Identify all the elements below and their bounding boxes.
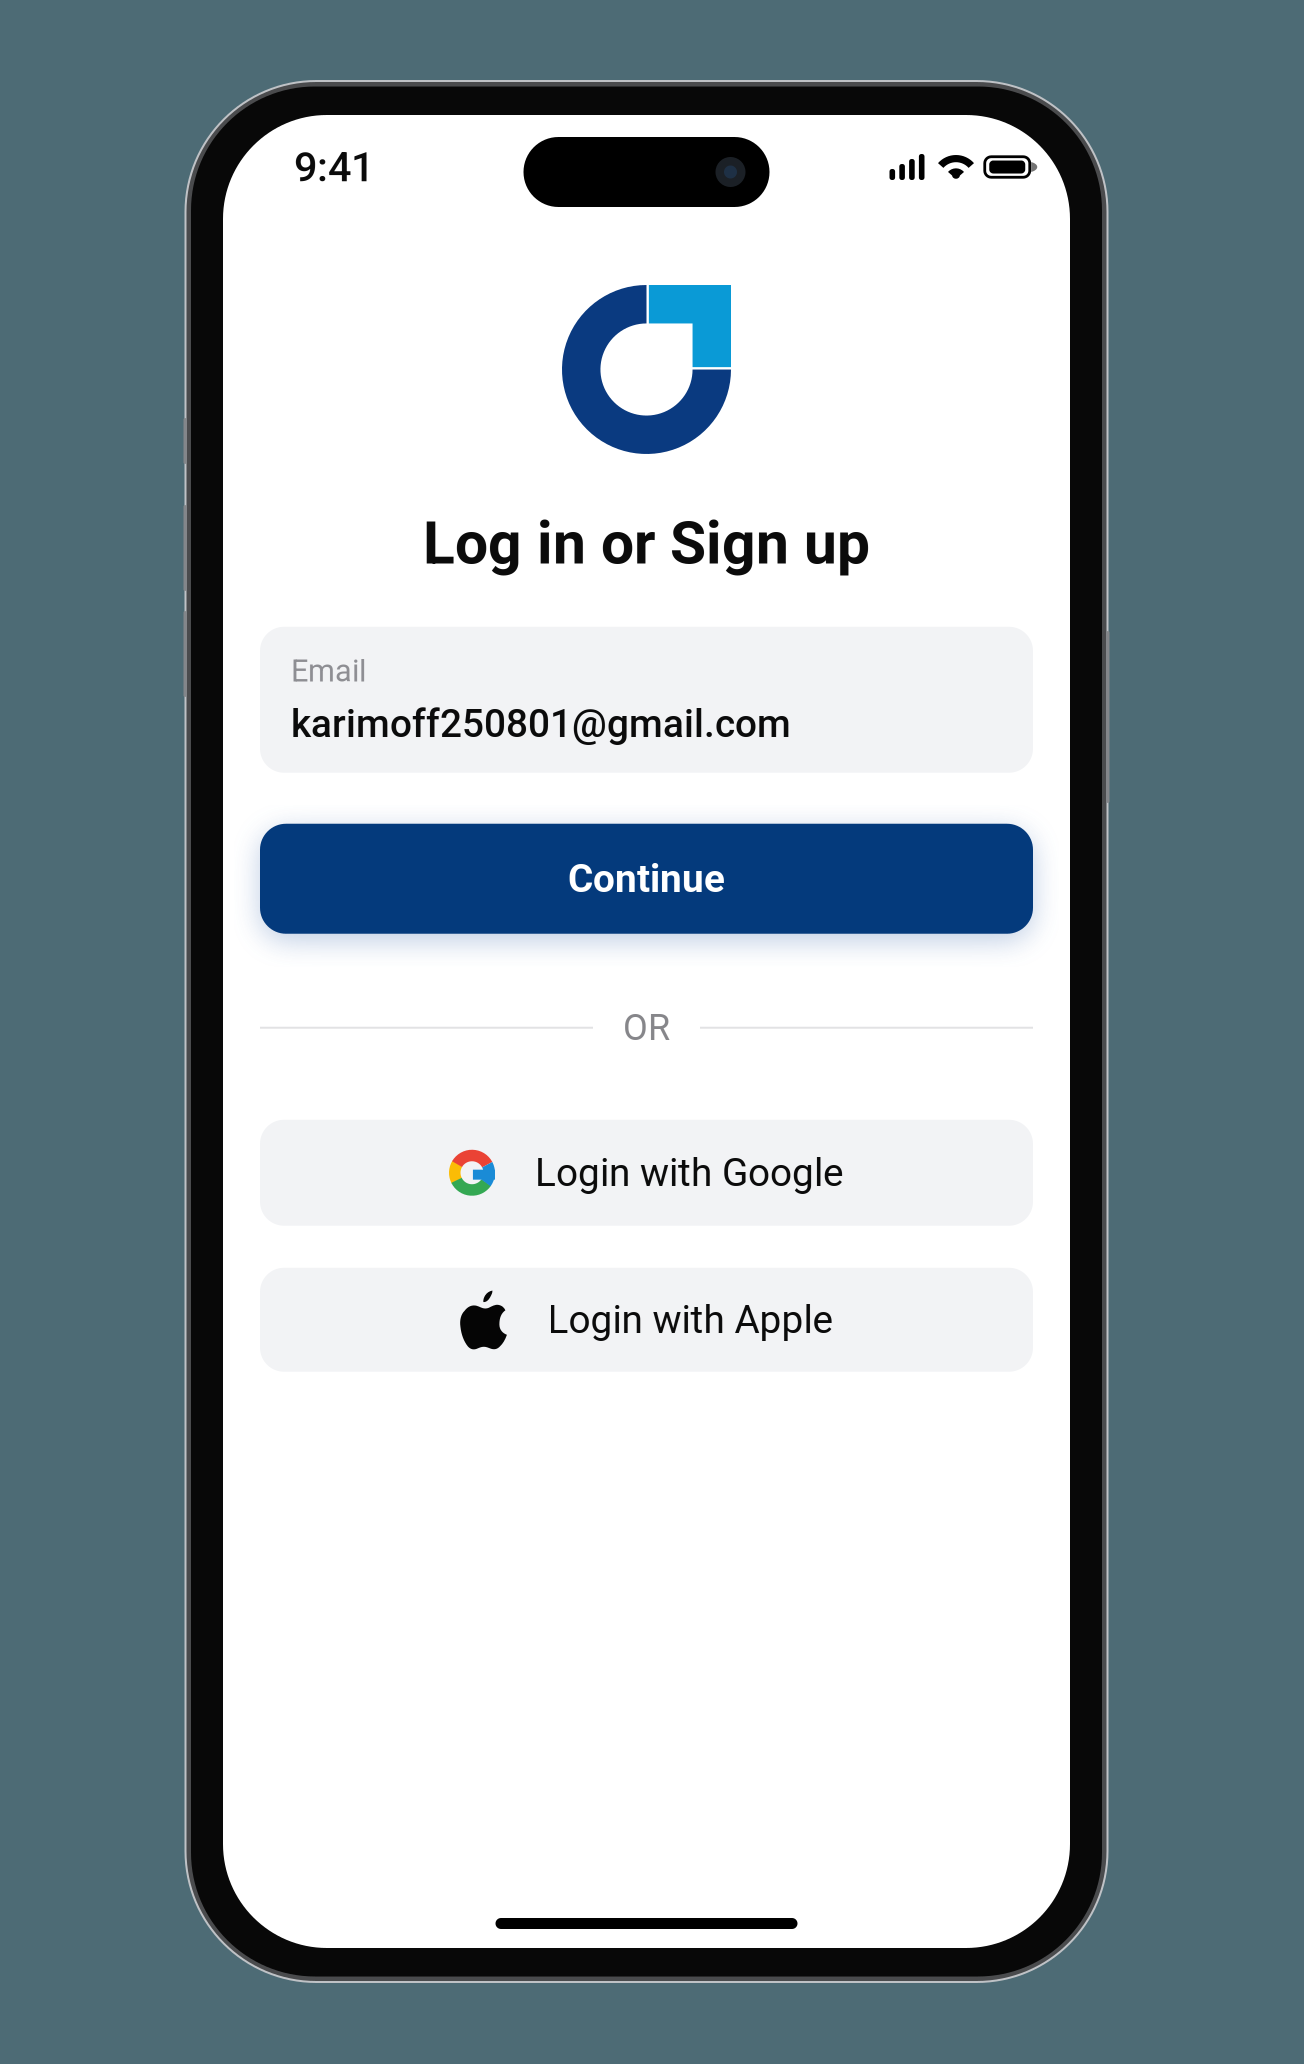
staticText: Continue [568,856,725,901]
staticText: OR [623,1007,670,1049]
button[interactable]: Login with Google [223,1120,1070,1226]
staticText: karimoff250801@gmail.com [291,701,791,746]
staticText: Log in or Sign up [423,509,870,578]
staticText: Login with Google [535,1150,844,1195]
staticText: 9:41 [294,143,374,191]
staticText: Email [291,653,366,689]
staticText: Login with Apple [547,1297,833,1342]
button[interactable]: Continue [223,824,1070,934]
button[interactable]: Login with Apple [223,1268,1070,1372]
